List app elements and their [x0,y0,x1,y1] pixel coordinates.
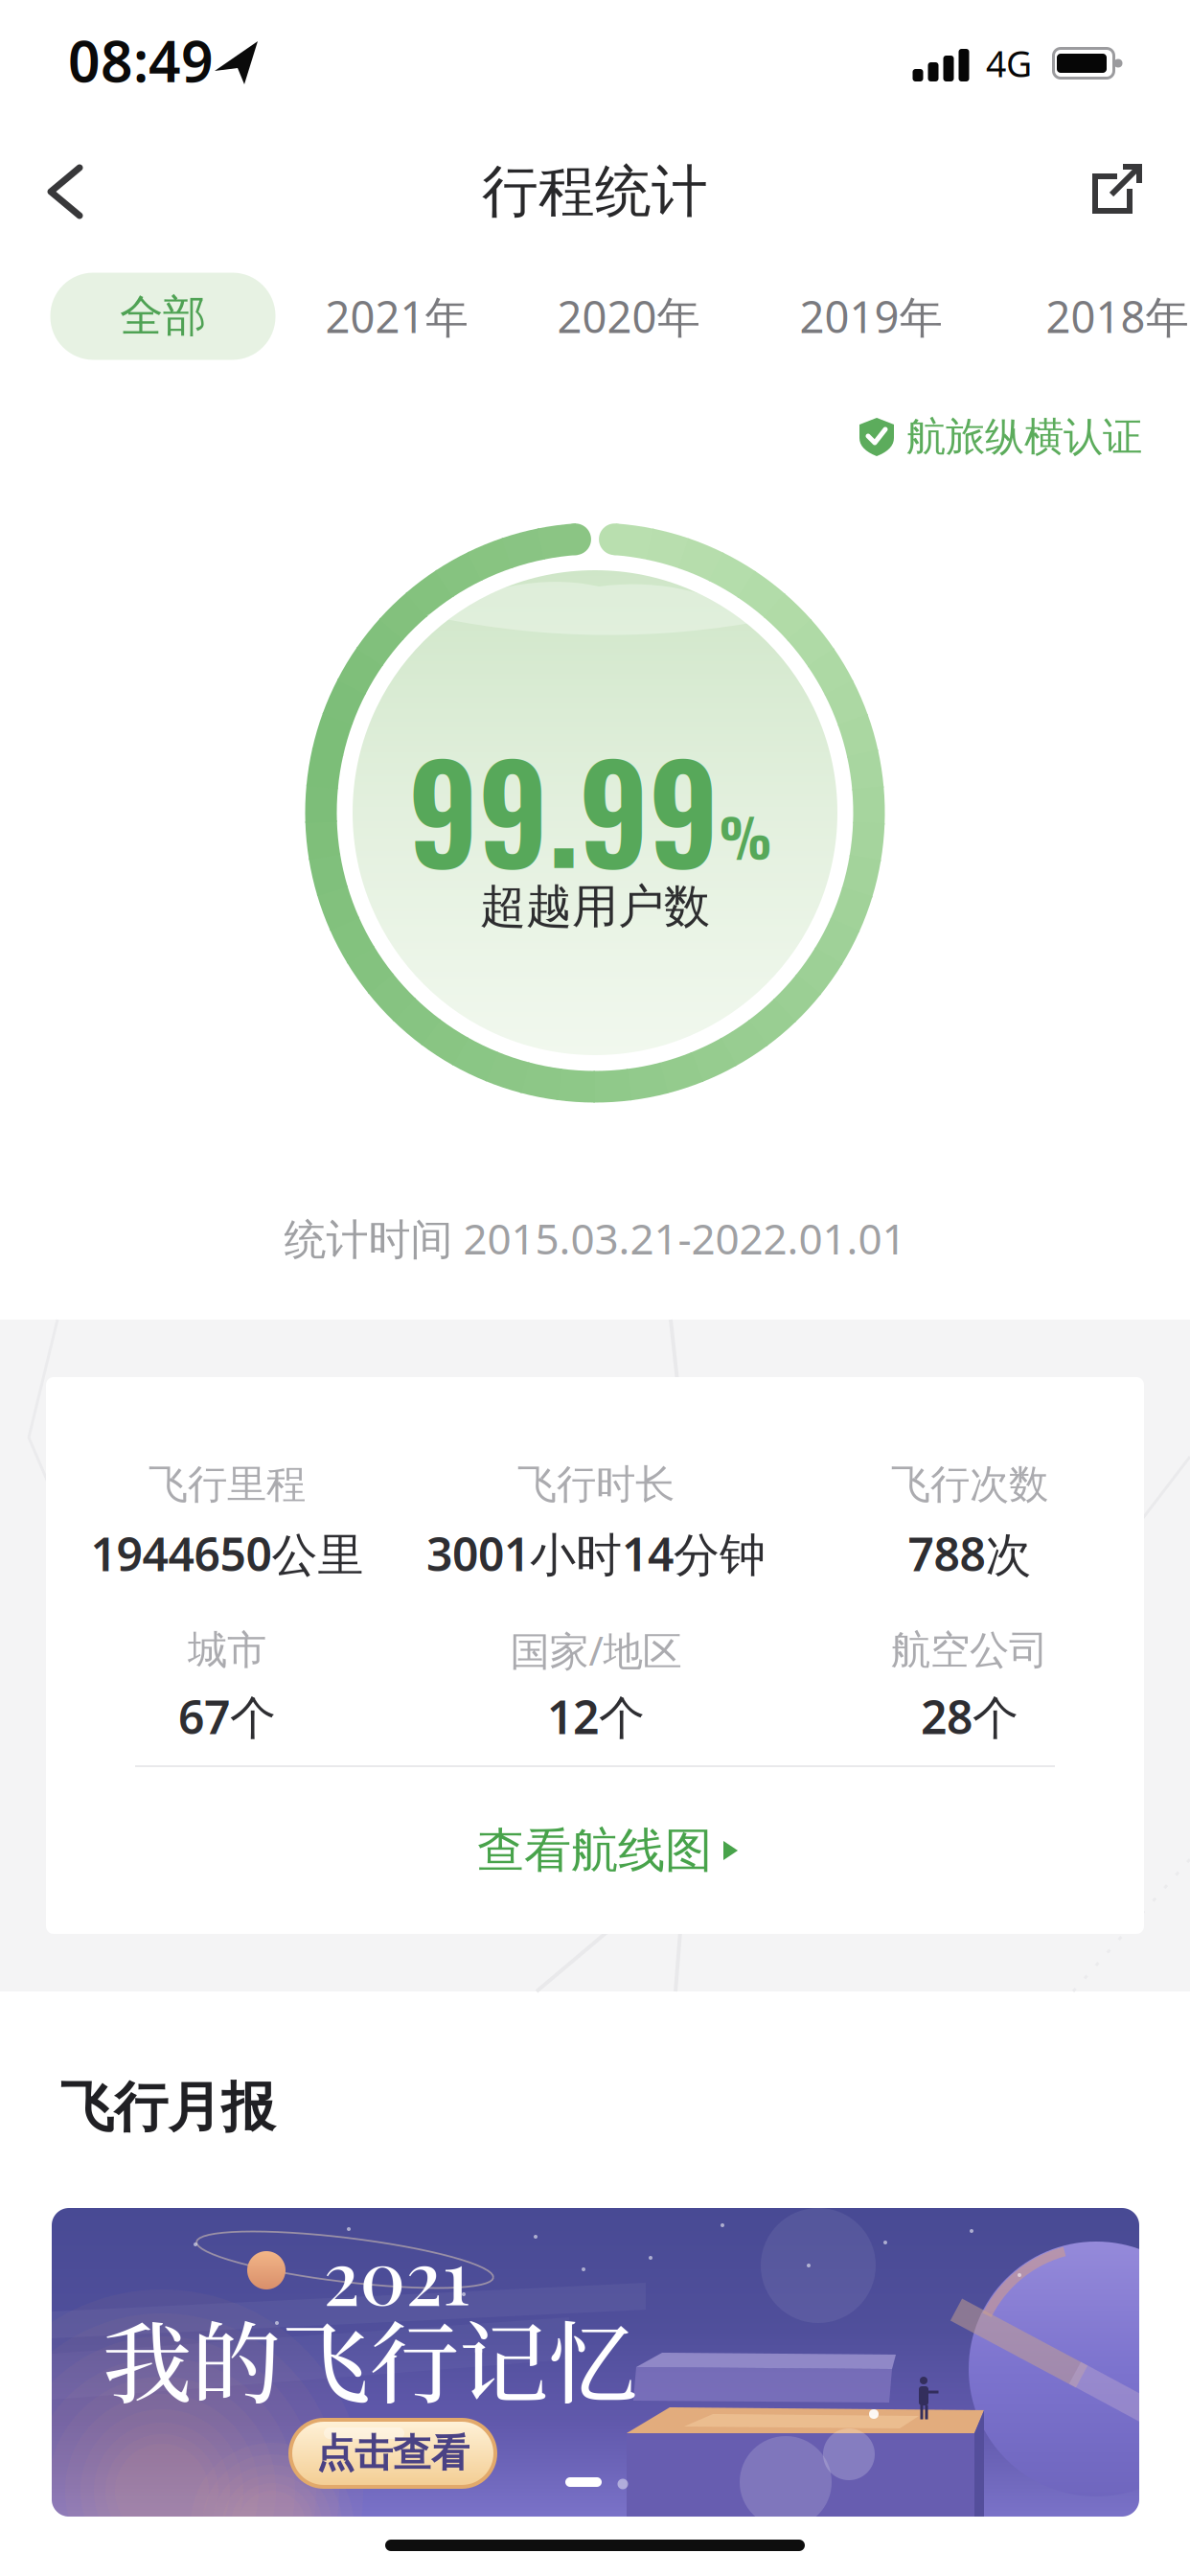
staticText: 航旅纵横认证 [906,413,1142,461]
staticText: 28个 [921,1686,1018,1747]
staticText: 2021 [323,2225,470,2324]
staticText: % [719,796,772,875]
button[interactable]: 2018年 [1046,287,1189,345]
staticText: 2021年 [325,287,468,345]
staticText: 飞行次数 [891,1460,1048,1509]
staticText: 67个 [178,1686,276,1747]
staticText: 2020年 [557,287,700,345]
staticText: 4G [986,39,1032,87]
staticText: 12个 [547,1686,645,1747]
staticText: 行程统计 [482,157,708,226]
staticText: 超越用户数 [480,878,710,935]
button[interactable]: 2019年 [800,287,942,345]
staticText: 2018年 [1046,287,1189,345]
button[interactable]: 2020年 [557,287,700,345]
staticText: 统计时间 2015.03.21-2022.01.01 [284,1210,906,1266]
staticText: 788次 [908,1523,1031,1584]
staticText: 点击查看 [316,2430,469,2477]
staticText: 2019年 [800,287,942,345]
staticText: 99.99 [408,709,719,906]
staticText: 飞行月报 [60,2074,275,2140]
staticText: 1944650公里 [91,1523,364,1584]
button[interactable]: 2021年 [325,287,468,345]
staticText: 我的飞行记忆 [103,2293,637,2422]
button[interactable]: 查看航线图 [477,1822,738,1880]
staticText: 航空公司 [891,1626,1048,1675]
button[interactable] [47,166,85,219]
button[interactable]: 2021 [52,2208,1139,2517]
button[interactable]: 全部 [50,273,275,360]
staticText: 全部 [120,290,206,343]
staticText: 国家/地区 [510,1624,682,1677]
staticText: 城市 [188,1626,266,1675]
button[interactable]: 点击查看 [290,2420,495,2487]
staticText: 3001小时14分钟 [426,1523,766,1584]
staticText: 飞行时长 [517,1460,675,1509]
staticText: 查看航线图 [477,1822,712,1880]
staticText: 飞行里程 [149,1460,306,1509]
staticText: 08:49 [68,23,214,98]
button[interactable] [1087,164,1142,219]
